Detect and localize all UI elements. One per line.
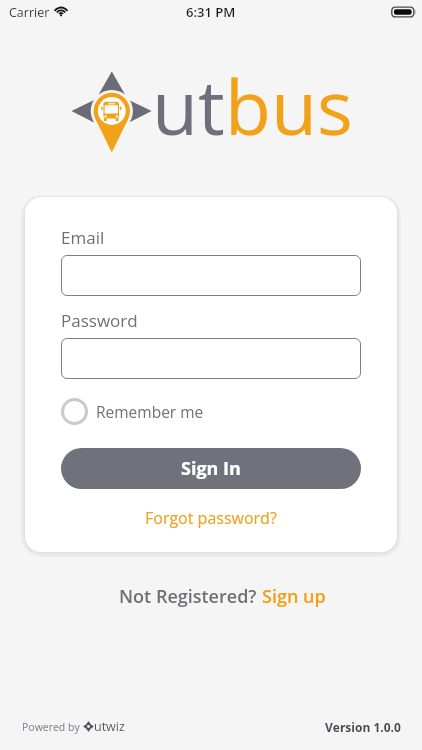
staticText: bus bbox=[225, 55, 353, 157]
staticText: Remember me bbox=[96, 401, 204, 422]
staticText: ut bbox=[152, 55, 225, 157]
staticText: utwiz bbox=[94, 718, 125, 735]
staticText: Not Registered? bbox=[119, 584, 262, 609]
staticText: Version 1.0.0 bbox=[325, 719, 401, 735]
button[interactable]: Sign up bbox=[262, 584, 326, 609]
staticText: Carrier bbox=[9, 4, 50, 21]
staticText: Password bbox=[61, 309, 138, 332]
button[interactable]: Forgot password? bbox=[145, 507, 277, 529]
button[interactable]: Sign In bbox=[61, 448, 361, 489]
button[interactable] bbox=[61, 255, 361, 296]
staticText: 6:31 PM bbox=[186, 3, 236, 21]
staticText: Email bbox=[61, 226, 105, 249]
button[interactable]: Remember me bbox=[61, 398, 204, 425]
button[interactable] bbox=[61, 338, 361, 379]
staticText: Sign In bbox=[181, 456, 241, 481]
staticText: Powered by bbox=[22, 720, 83, 734]
